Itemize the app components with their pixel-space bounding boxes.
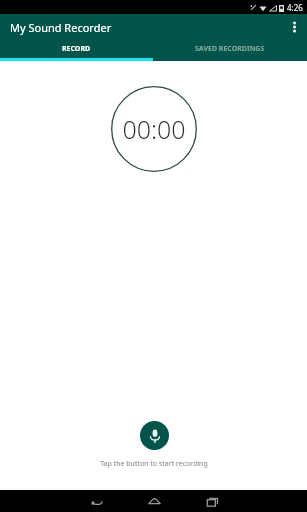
button[interactable]: Home [134, 490, 174, 512]
button[interactable]: Start recording [140, 421, 169, 450]
staticText: Tap the button to start recording [100, 459, 208, 469]
staticText: 00:00 [122, 112, 186, 146]
staticText: RECORD [62, 44, 91, 54]
button[interactable]: Recent apps [192, 490, 232, 512]
staticText: My Sound Recorder [10, 20, 112, 35]
button[interactable]: SAVED RECORDINGS [153, 40, 307, 58]
staticText: SAVED RECORDINGS [195, 44, 265, 54]
button[interactable]: RECORD [0, 40, 153, 58]
button[interactable]: More options [281, 14, 307, 40]
staticText: 4:26 [287, 2, 303, 13]
button[interactable]: Back [76, 490, 116, 512]
